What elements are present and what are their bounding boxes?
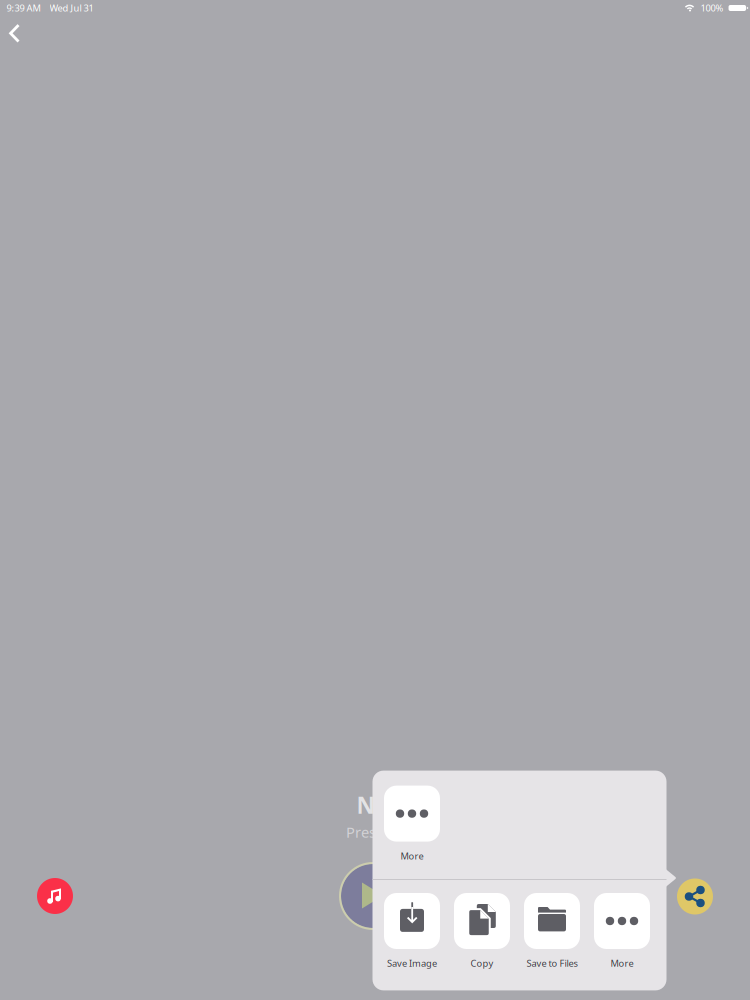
staticText: 100% [700,2,723,14]
staticText: Save to Files [526,957,577,969]
button[interactable]: Copy [447,893,517,969]
staticText: Save Image [387,957,437,969]
button[interactable]: Play [339,862,407,930]
button[interactable]: Save Image [377,893,447,969]
staticText: More [610,957,633,969]
staticText: Copy [470,957,493,969]
staticText: Now Playing [356,790,497,820]
button[interactable]: Share [673,874,717,918]
staticText: Wed Jul 31 [49,2,93,14]
staticText: Press play to listen [346,822,474,842]
button[interactable]: Back [0,12,32,55]
staticText: More [400,850,423,862]
button[interactable]: More [377,786,447,862]
staticText: 9:39 AM [6,2,40,14]
button[interactable]: Save to Files [517,893,587,969]
button[interactable]: Music [33,874,77,918]
button[interactable]: More [587,893,657,969]
